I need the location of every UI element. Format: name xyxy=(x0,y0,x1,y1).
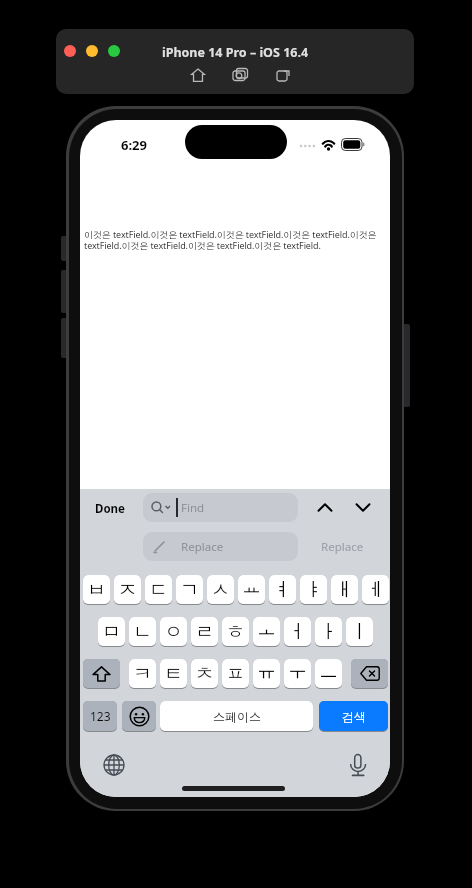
button[interactable]: ㅜ xyxy=(284,659,311,688)
button[interactable]: ㅈ xyxy=(114,575,141,604)
button[interactable]: ㅎ xyxy=(222,617,249,646)
button[interactable]: Replace xyxy=(321,539,364,555)
button[interactable]: ㅅ xyxy=(207,575,234,604)
button[interactable] xyxy=(349,753,367,777)
button[interactable]: Find xyxy=(143,493,298,522)
staticText: ㅋ xyxy=(133,662,152,686)
button[interactable]: 123 xyxy=(83,701,117,731)
button[interactable] xyxy=(86,45,98,57)
button[interactable] xyxy=(64,45,76,57)
staticText: ㅑ xyxy=(304,578,323,602)
staticText: ㅡ xyxy=(319,660,338,684)
button[interactable]: ㅍ xyxy=(222,659,249,688)
staticText: ㅐ xyxy=(335,578,354,602)
button[interactable]: ㅔ xyxy=(362,575,389,604)
staticText: ㅈ xyxy=(118,578,137,602)
staticText: ㅎ xyxy=(226,620,245,644)
staticText: ㅅ xyxy=(211,578,230,602)
staticText: ㄹ xyxy=(195,620,214,644)
button[interactable] xyxy=(102,753,126,777)
button[interactable]: ㅑ xyxy=(300,575,327,604)
staticText: ㅗ xyxy=(257,617,276,641)
button[interactable]: ㄹ xyxy=(191,617,218,646)
button[interactable]: 검색 xyxy=(319,701,388,731)
staticText: 검색 xyxy=(342,709,366,724)
staticText: iPhone 14 Pro – iOS 16.4 xyxy=(56,44,414,61)
button[interactable] xyxy=(351,659,388,688)
staticText: Find xyxy=(181,500,205,516)
staticText: ㅇ xyxy=(164,620,183,644)
staticText: ㅣ xyxy=(350,620,369,644)
staticText: ㅔ xyxy=(366,578,385,602)
button[interactable] xyxy=(276,68,290,82)
button[interactable]: ㅌ xyxy=(160,659,187,688)
button[interactable]: ㅋ xyxy=(129,659,156,688)
staticText: ㅏ xyxy=(319,620,338,644)
staticText: ㄱ xyxy=(180,578,199,602)
button[interactable]: ㅓ xyxy=(284,617,311,646)
staticText: 6:29 xyxy=(121,136,147,154)
button[interactable]: ㅛ xyxy=(238,575,265,604)
button[interactable]: ㅗ xyxy=(253,617,280,646)
button[interactable]: ㅁ xyxy=(98,617,125,646)
button[interactable]: ㅇ xyxy=(160,617,187,646)
button[interactable]: ㅐ xyxy=(331,575,358,604)
staticText: ㅌ xyxy=(164,662,183,686)
staticText: ㅓ xyxy=(288,620,307,644)
staticText: ㅁ xyxy=(102,620,121,644)
staticText: 스페이스 xyxy=(213,709,261,724)
button[interactable] xyxy=(108,45,120,57)
button[interactable]: ㅣ xyxy=(346,617,373,646)
button[interactable]: ㅊ xyxy=(191,659,218,688)
staticText: ㅍ xyxy=(226,662,245,686)
button[interactable] xyxy=(122,701,156,731)
button[interactable] xyxy=(355,503,371,512)
button[interactable]: Done xyxy=(95,501,125,517)
button[interactable]: ㄱ xyxy=(176,575,203,604)
button[interactable] xyxy=(233,68,248,83)
staticText: ㅕ xyxy=(273,578,292,602)
staticText: ㅂ xyxy=(87,578,106,602)
button[interactable]: ㄴ xyxy=(129,617,156,646)
button[interactable] xyxy=(191,68,205,82)
button[interactable]: ㅕ xyxy=(269,575,296,604)
staticText: ㅜ xyxy=(288,659,307,683)
staticText: ㄷ xyxy=(149,578,168,602)
button[interactable] xyxy=(83,659,120,688)
staticText: 이것은 textField.이것은 textField.이것은 textFiel… xyxy=(84,228,377,240)
button[interactable]: ㅡ xyxy=(315,659,342,688)
staticText: ㅠ xyxy=(257,659,276,683)
button[interactable]: ㅂ xyxy=(83,575,110,604)
button[interactable]: 스페이스 xyxy=(160,701,313,731)
button[interactable]: ㅏ xyxy=(315,617,342,646)
button[interactable]: ㅠ xyxy=(253,659,280,688)
staticText: Replace xyxy=(181,539,224,555)
staticText: ㅛ xyxy=(242,575,261,599)
button[interactable]: Replace xyxy=(143,532,298,561)
staticText: textField.이것은 textField.이것은 textField.이것… xyxy=(84,239,321,251)
button[interactable] xyxy=(317,503,333,512)
staticText: ㄴ xyxy=(133,620,152,644)
button[interactable]: ㄷ xyxy=(145,575,172,604)
staticText: ㅊ xyxy=(195,662,214,686)
staticText: 123 xyxy=(90,708,111,724)
